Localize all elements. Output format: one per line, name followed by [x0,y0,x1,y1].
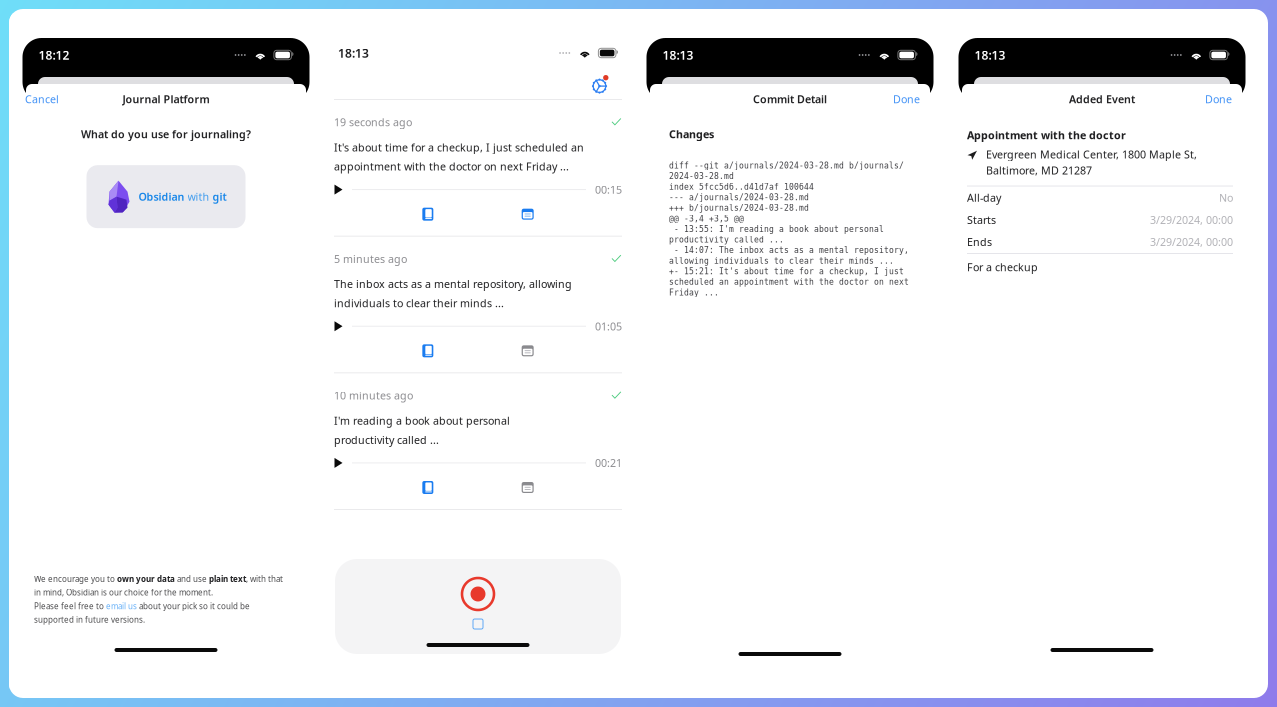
staticText: I'm reading a book about personal [334,413,510,428]
staticText: and use [175,573,209,584]
button[interactable]: Play [334,321,343,332]
button[interactable]: Play [334,184,343,195]
staticText: with [187,190,212,204]
staticText: Ends [967,235,992,249]
staticText: Journal Platform [122,92,209,106]
staticText: own your data [117,573,175,584]
staticText: in mind, Obsidian is our choice for the … [34,587,213,598]
staticText: Cancel [25,92,59,106]
button[interactable]: Done [890,88,923,110]
staticText: Evergreen Medical Center, 1800 Maple St, [986,147,1197,161]
button[interactable]: Journal entry [422,344,433,357]
staticText: 3/29/2024, 00:00 [1150,213,1233,227]
staticText: 3/29/2024, 00:00 [1150,235,1233,249]
button[interactable]: Record [460,576,496,612]
staticText: 18:12 [38,47,69,63]
staticText: plain text [209,573,246,584]
staticText: , with that [246,573,283,584]
staticText: appointment with the doctor on next Frid… [334,159,569,173]
staticText: 18:13 [338,45,369,61]
button[interactable]: Settings [591,75,608,94]
staticText: Baltimore, MD 21287 [986,163,1092,177]
staticText: scheduled an appointment with the doctor… [669,277,909,287]
button[interactable]: Cancel [22,88,62,110]
staticText: - 14:07: The inbox acts as a mental repo… [669,246,909,255]
staticText: Changes [669,127,714,141]
staticText: @@ -3,4 +3,5 @@ [669,214,744,223]
staticText: supported in future versions. [34,614,145,625]
staticText: 10 minutes ago [334,388,413,402]
staticText: Please feel free to [34,601,106,611]
staticText: productivity called ... [669,235,784,244]
staticText: Done [1205,92,1232,106]
staticText: Appointment with the doctor [967,128,1126,142]
staticText: All-day [967,190,1001,205]
staticText: 18:13 [974,47,1005,63]
staticText: index 5fcc5d6..d41d7af 100644 [669,182,814,191]
button[interactable]: email us [106,601,137,611]
button[interactable]: Calendar event [522,482,534,493]
staticText: allowing individuals to clear their mind… [669,256,894,265]
staticText: 00:21 [595,456,622,470]
staticText: +- 15:21: It's about time for a checkup,… [669,267,904,276]
button[interactable]: Calendar event [522,209,534,220]
staticText: individuals to clear their minds ... [334,296,504,310]
button[interactable]: Done [1202,88,1235,110]
staticText: No [1219,190,1233,205]
staticText: about your pick so it could be [137,601,250,611]
staticText: productivity called ... [334,433,439,447]
staticText: Added Event [1069,92,1135,106]
button[interactable]: Journal entry [422,208,433,221]
staticText: It's about time for a checkup, I just sc… [334,140,584,154]
staticText: Starts [967,213,996,227]
staticText: +++ b/journals/2024-03-28.md [669,203,809,213]
staticText: The inbox acts as a mental repository, a… [334,277,572,291]
staticText: For a checkup [967,260,1038,274]
staticText: Friday ... [669,288,719,297]
staticText: - 13:55: I'm reading a book about person… [669,225,884,234]
staticText: email us [106,601,137,611]
staticText: 19 seconds ago [334,115,412,129]
staticText: 00:15 [595,182,622,197]
staticText: 18:13 [662,47,693,63]
staticText: 2024-03-28.md [669,172,734,181]
staticText: --- a/journals/2024-03-28.md [669,193,809,202]
staticText: 01:05 [595,319,622,333]
button[interactable]: Journal entry [422,481,433,494]
button[interactable]: New note [472,618,484,630]
staticText: Done [893,92,920,106]
staticText: diff --git a/journals/2024-03-28.md b/jo… [669,161,904,170]
staticText: git [212,190,226,204]
button[interactable]: Play [334,457,343,468]
staticText: What do you use for journaling? [81,127,251,141]
staticText: Commit Detail [753,92,827,106]
button[interactable]: Obsidian [86,165,245,228]
staticText: 5 minutes ago [334,252,407,266]
staticText: Obsidian [138,190,187,204]
staticText: We encourage you to [34,573,117,584]
button[interactable]: Calendar event [522,345,534,356]
